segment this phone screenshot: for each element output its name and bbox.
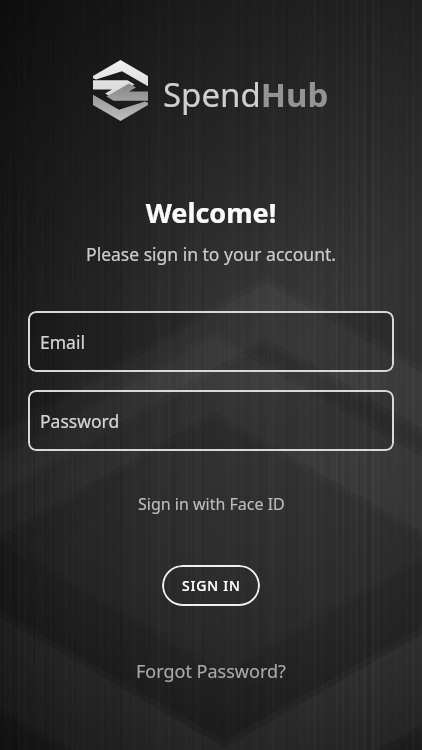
staticText: SIGN IN [182,576,241,595]
staticText: Email [40,330,85,354]
button[interactable]: Forgot Password? [136,659,286,684]
button[interactable]: SIGN IN [162,565,260,606]
button[interactable]: Email [28,311,394,372]
staticText: Password [40,409,120,433]
staticText: SpendHub [163,72,329,117]
button[interactable]: Sign in with Face ID [138,493,285,515]
staticText: Welcome! [0,194,422,231]
button[interactable]: Password [28,390,394,451]
staticText: Please sign in to your account. [0,242,422,266]
